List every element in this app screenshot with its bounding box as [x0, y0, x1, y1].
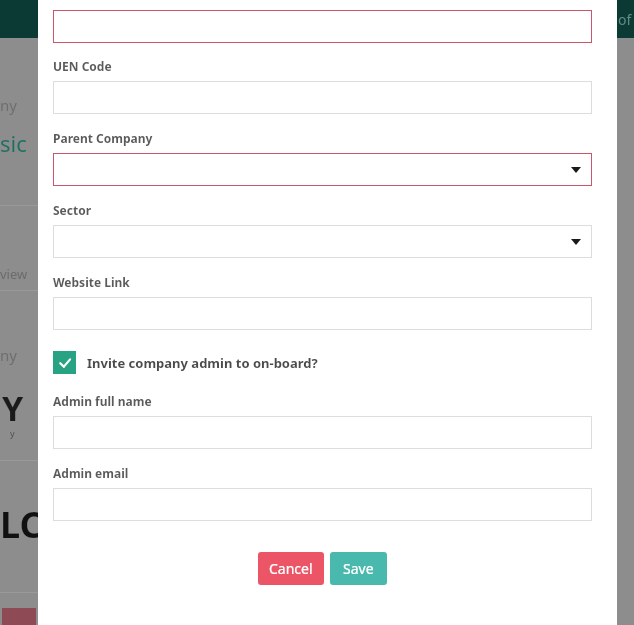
button[interactable]: Admin full name [53, 416, 592, 449]
staticText: Y [2, 385, 24, 431]
staticText: Website Link [53, 274, 130, 290]
button[interactable]: Invite company admin to on-board? [53, 351, 318, 374]
button[interactable]: UEN Code [53, 81, 592, 114]
staticText: Cancel [269, 559, 313, 578]
staticText: ny [0, 345, 17, 365]
button[interactable]: Parent Company [53, 153, 592, 186]
button[interactable]: Website Link [53, 297, 592, 330]
button[interactable]: Cancel [258, 552, 324, 585]
staticText: Sector [53, 202, 92, 218]
button[interactable]: Save [330, 552, 387, 585]
staticText: Admin email [53, 465, 129, 481]
staticText: ny [0, 95, 17, 115]
staticText: sic [0, 128, 27, 158]
staticText: of [618, 10, 632, 29]
staticText: LC [0, 500, 43, 549]
staticText: y [10, 427, 15, 439]
staticText: Admin full name [53, 393, 152, 409]
staticText: Invite company admin to on-board? [87, 354, 318, 372]
button[interactable]: Company name [53, 10, 592, 43]
staticText: UEN Code [53, 58, 112, 74]
button[interactable]: Sector [53, 225, 592, 258]
staticText: view [0, 265, 28, 283]
staticText: Parent Company [53, 130, 153, 146]
button[interactable]: Admin email [53, 488, 592, 521]
staticText: Save [343, 559, 374, 578]
